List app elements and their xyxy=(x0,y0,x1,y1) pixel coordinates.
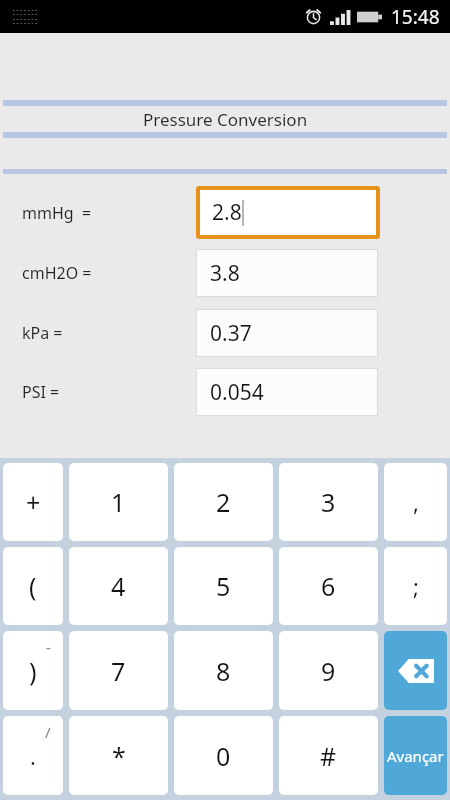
staticText: ( xyxy=(29,569,37,603)
staticText: # xyxy=(320,739,337,773)
staticText: PSI = xyxy=(22,381,60,403)
button[interactable]: 4 xyxy=(69,547,168,625)
staticText: 2.8 xyxy=(212,198,242,227)
button[interactable]: Backspace xyxy=(384,631,447,710)
button[interactable]: 0.37 xyxy=(196,309,378,357)
staticText: , xyxy=(413,487,419,517)
button[interactable]: 3.8 xyxy=(196,249,378,297)
staticText: 3 xyxy=(321,485,336,519)
staticText: + xyxy=(26,485,41,519)
button[interactable]: 0.054 xyxy=(196,368,378,416)
button[interactable]: 5 xyxy=(174,547,273,625)
button[interactable]: ( xyxy=(3,547,63,625)
staticText: ; xyxy=(413,571,419,601)
button[interactable]: 2 xyxy=(174,463,273,541)
staticText: 15:48 xyxy=(391,4,440,30)
staticText: 8 xyxy=(216,654,231,688)
button[interactable]: ) xyxy=(3,631,63,710)
staticText: 7 xyxy=(111,654,126,688)
staticText: ) xyxy=(29,654,37,688)
button[interactable]: 8 xyxy=(174,631,273,710)
staticText: Pressure Conversion xyxy=(143,108,308,131)
button[interactable]: ; xyxy=(384,547,447,625)
staticText: 3.8 xyxy=(210,259,240,288)
button[interactable]: 6 xyxy=(279,547,378,625)
staticText: 0.054 xyxy=(210,378,264,407)
staticText: 2 xyxy=(216,485,231,519)
staticText: cmH2O = xyxy=(22,262,92,284)
staticText: * xyxy=(112,739,126,773)
staticText: mmHg = xyxy=(22,202,92,224)
button[interactable]: # xyxy=(279,716,378,795)
button[interactable]: . xyxy=(3,716,63,795)
button[interactable]: 7 xyxy=(69,631,168,710)
button[interactable]: Avançar xyxy=(384,716,447,795)
button[interactable]: 1 xyxy=(69,463,168,541)
staticText: 9 xyxy=(321,654,336,688)
staticText: 0.37 xyxy=(210,319,252,348)
button[interactable]: 9 xyxy=(279,631,378,710)
button[interactable]: 0 xyxy=(174,716,273,795)
staticText: kPa = xyxy=(22,322,63,344)
staticText: Avançar xyxy=(387,746,444,766)
staticText: 1 xyxy=(111,485,126,519)
button[interactable]: 2.8 xyxy=(200,190,376,235)
staticText: 6 xyxy=(321,569,336,603)
staticText: / xyxy=(45,722,51,742)
staticText: 4 xyxy=(111,569,126,603)
button[interactable]: 3 xyxy=(279,463,378,541)
button[interactable]: , xyxy=(384,463,447,541)
staticText: - xyxy=(46,637,51,657)
staticText: 0 xyxy=(216,739,231,773)
staticText: . xyxy=(30,741,36,771)
button[interactable]: * xyxy=(69,716,168,795)
button[interactable]: + xyxy=(3,463,63,541)
staticText: 5 xyxy=(216,569,231,603)
